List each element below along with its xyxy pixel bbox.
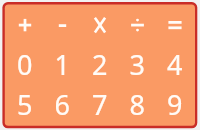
button[interactable]: 4 bbox=[160, 44, 200, 87]
button[interactable]: 7 bbox=[80, 87, 120, 130]
button[interactable]: Multiply bbox=[80, 0, 120, 44]
button[interactable]: Equals bbox=[160, 0, 200, 44]
button[interactable]: 5 bbox=[0, 87, 40, 130]
button[interactable]: 3 bbox=[120, 44, 160, 87]
button[interactable]: 8 bbox=[120, 87, 160, 130]
button[interactable]: Divide bbox=[120, 0, 160, 44]
button[interactable]: 0 bbox=[0, 44, 40, 87]
button[interactable]: 1 bbox=[40, 44, 80, 87]
button[interactable]: 9 bbox=[160, 87, 200, 130]
button[interactable]: 2 bbox=[80, 44, 120, 87]
button[interactable]: 6 bbox=[40, 87, 80, 130]
button[interactable]: Plus bbox=[0, 0, 40, 44]
button[interactable]: Minus bbox=[40, 0, 80, 44]
